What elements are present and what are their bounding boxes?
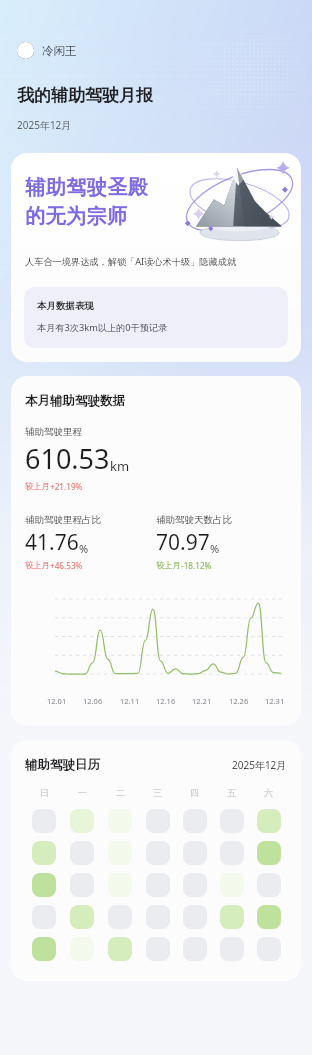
staticText: 四 — [190, 787, 199, 798]
button[interactable] — [108, 905, 132, 929]
staticText: 六 — [264, 787, 273, 798]
button[interactable] — [257, 809, 281, 833]
button[interactable] — [70, 905, 94, 929]
staticText: 较上月 — [25, 560, 50, 570]
button[interactable] — [183, 937, 207, 961]
staticText: 12.01 — [47, 696, 67, 706]
button[interactable] — [220, 873, 244, 897]
button[interactable]: 辅助驾驶里程占比 — [25, 514, 156, 571]
button[interactable] — [257, 841, 281, 865]
button[interactable] — [70, 873, 94, 897]
staticText: 2025年12月 — [17, 118, 72, 132]
staticText: -18.12% — [181, 560, 212, 571]
staticText: 41.76 — [25, 528, 79, 557]
button[interactable] — [70, 841, 94, 865]
staticText: 冷闲王 — [42, 44, 77, 58]
button[interactable] — [108, 937, 132, 961]
staticText: 辅助驾驶里程 — [25, 426, 82, 438]
staticText: 较上月 — [25, 481, 50, 491]
button[interactable] — [220, 841, 244, 865]
button[interactable] — [146, 937, 170, 961]
staticText: 辅助驾驶里程占比 — [25, 514, 101, 526]
staticText: 2025年12月 — [232, 758, 287, 772]
button[interactable] — [257, 873, 281, 897]
button[interactable] — [183, 809, 207, 833]
button[interactable] — [32, 809, 56, 833]
button[interactable] — [146, 809, 170, 833]
staticText: 较上月 — [156, 560, 181, 570]
button[interactable]: 冷闲王 — [15, 40, 79, 61]
staticText: 本月辅助驾驶数据 — [25, 393, 125, 409]
button[interactable] — [146, 841, 170, 865]
staticText: 12.21 — [192, 696, 212, 706]
button[interactable] — [32, 937, 56, 961]
button[interactable] — [108, 809, 132, 833]
staticText: 人车合一境界达成，解锁「AI读心术十级」隐藏成就 — [25, 255, 237, 268]
staticText: 日 — [40, 787, 49, 798]
button[interactable] — [183, 873, 207, 897]
button[interactable] — [70, 937, 94, 961]
button[interactable] — [70, 809, 94, 833]
staticText: % — [79, 541, 89, 556]
staticText: 70.97 — [156, 528, 210, 557]
button[interactable] — [220, 937, 244, 961]
staticText: 一 — [78, 787, 87, 798]
staticText: 本月有3次3km以上的0干预记录 — [37, 321, 168, 334]
staticText: +21.19% — [50, 481, 83, 492]
staticText: 610.53 — [25, 440, 110, 477]
staticText: 二 — [116, 787, 125, 798]
staticText: 辅助驾驶日历 — [25, 757, 100, 773]
button[interactable] — [220, 809, 244, 833]
staticText: 三 — [153, 787, 162, 798]
staticText: 本月数据表现 — [37, 300, 94, 312]
button[interactable] — [32, 841, 56, 865]
button[interactable]: 辅助驾驶圣殿 — [11, 153, 301, 362]
staticText: +46.53% — [50, 560, 83, 571]
button[interactable] — [108, 873, 132, 897]
staticText: 12.26 — [229, 696, 249, 706]
button[interactable] — [146, 905, 170, 929]
button[interactable] — [146, 873, 170, 897]
button[interactable]: 本月数据表现 — [24, 287, 288, 348]
button[interactable] — [220, 905, 244, 929]
staticText: % — [210, 541, 220, 556]
button[interactable] — [108, 841, 132, 865]
button[interactable] — [32, 905, 56, 929]
button[interactable] — [257, 905, 281, 929]
button[interactable] — [183, 905, 207, 929]
button[interactable]: 本月辅助驾驶数据 — [11, 376, 301, 726]
button[interactable] — [32, 873, 56, 897]
staticText: 12.06 — [83, 696, 103, 706]
staticText: 的无为宗师 — [25, 204, 128, 229]
staticText: 辅助驾驶天数占比 — [156, 514, 232, 526]
button[interactable]: 辅助驾驶日历 — [11, 740, 301, 981]
button[interactable] — [183, 841, 207, 865]
button[interactable] — [257, 937, 281, 961]
button[interactable]: 辅助驾驶天数占比 — [156, 514, 287, 571]
staticText: 辅助驾驶圣殿 — [25, 175, 148, 200]
staticText: 五 — [227, 787, 236, 798]
staticText: km — [110, 457, 130, 475]
staticText: 12.31 — [265, 696, 285, 706]
staticText: 我的辅助驾驶月报 — [17, 85, 153, 106]
staticText: 12.16 — [156, 696, 176, 706]
staticText: 12.11 — [120, 696, 140, 706]
